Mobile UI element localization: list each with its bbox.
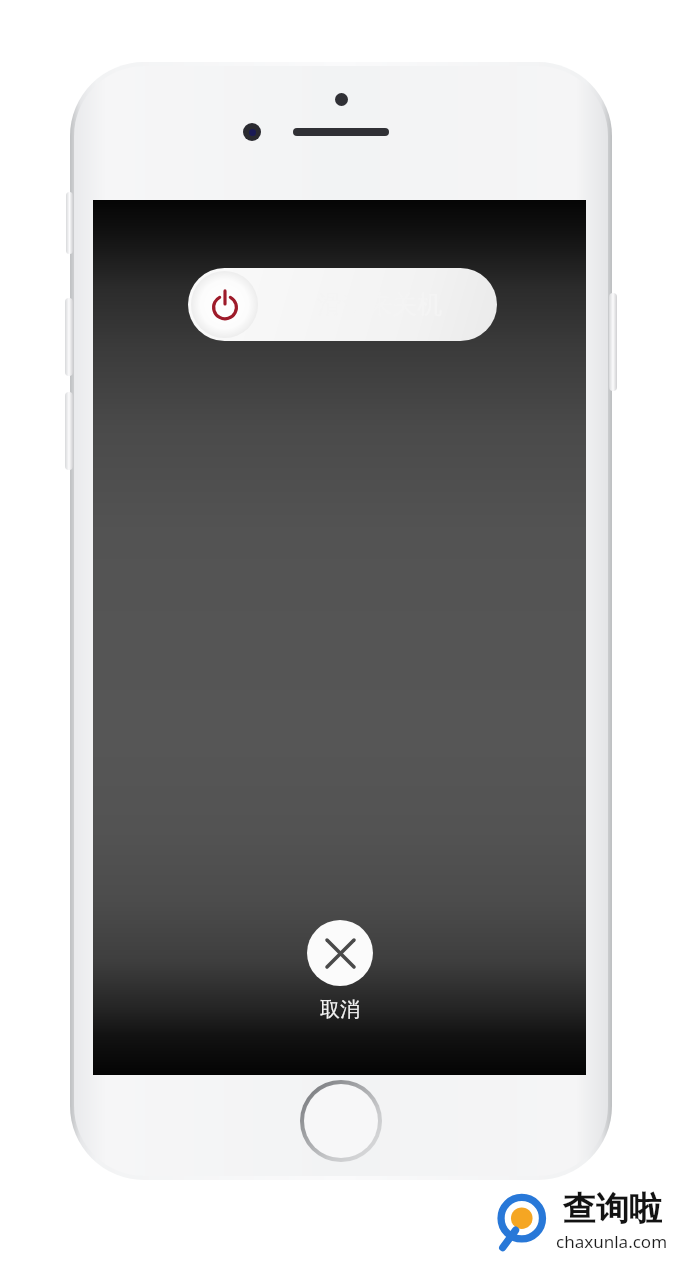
- button[interactable]: Side button: [609, 293, 617, 391]
- button[interactable]: Side button: [65, 392, 73, 470]
- button[interactable]: Home: [300, 1080, 382, 1162]
- button[interactable]: Side button: [65, 298, 73, 376]
- button[interactable]: Slide to power off: [191, 271, 258, 338]
- other: Cancel: [307, 920, 373, 986]
- staticText: chaxunla.com: [556, 1230, 668, 1253]
- button[interactable]: 滑动来关机: [188, 268, 497, 341]
- button[interactable]: Cancel: [307, 920, 373, 1022]
- staticText: 查询啦: [563, 1188, 662, 1230]
- staticText: 取消: [320, 997, 360, 1022]
- button[interactable]: Side button: [66, 192, 73, 254]
